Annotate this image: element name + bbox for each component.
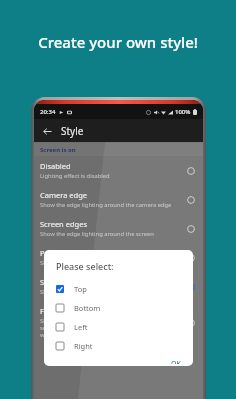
staticText: Camera edge — [40, 190, 87, 200]
staticText: Show a lighting effect around the finger… — [40, 317, 181, 339]
staticText: Left — [74, 322, 88, 332]
staticText: Show a lighting effect around the punch … — [40, 259, 163, 267]
staticText: Screen edges — [40, 219, 87, 229]
staticText: 100% — [175, 108, 191, 116]
button[interactable]: Right — [44, 336, 193, 355]
button[interactable]: Disabled — [34, 156, 203, 185]
staticText: 20:34 — [40, 108, 56, 116]
staticText: Lighting effect is disabled — [40, 172, 110, 180]
staticText: Statusbar dot — [40, 277, 88, 287]
button[interactable]: Left — [44, 317, 193, 336]
button[interactable]: Screen edges — [34, 214, 203, 243]
staticText: Show the edge lighting around the camera… — [40, 201, 172, 209]
staticText: OK — [171, 359, 181, 364]
staticText: Punch hole — [40, 248, 80, 258]
button[interactable]: Statusbar dot — [34, 272, 203, 301]
staticText: Fingerprint sensor — [40, 306, 106, 316]
button[interactable]: Fingerprint sensor — [34, 301, 203, 344]
button[interactable]: Camera edge — [34, 185, 203, 214]
staticText: Right — [74, 341, 93, 351]
button[interactable]: OK — [167, 357, 185, 366]
button[interactable]: Punch hole — [34, 243, 203, 272]
staticText: Style — [61, 124, 84, 138]
staticText: Top — [74, 284, 87, 294]
staticText: Show a "LED" dot in the statusbar — [40, 288, 132, 296]
staticText: Bottom — [74, 303, 101, 313]
staticText: Disabled — [40, 161, 71, 171]
button[interactable]: Back — [39, 123, 55, 139]
staticText: Create your own style! — [38, 32, 198, 52]
staticText: Show the edge lighting around the screen — [40, 230, 154, 238]
staticText: Please select: — [56, 260, 114, 272]
staticText: Screen is on — [40, 146, 76, 154]
button[interactable]: Top — [44, 279, 193, 298]
button[interactable]: Bottom — [44, 298, 193, 317]
